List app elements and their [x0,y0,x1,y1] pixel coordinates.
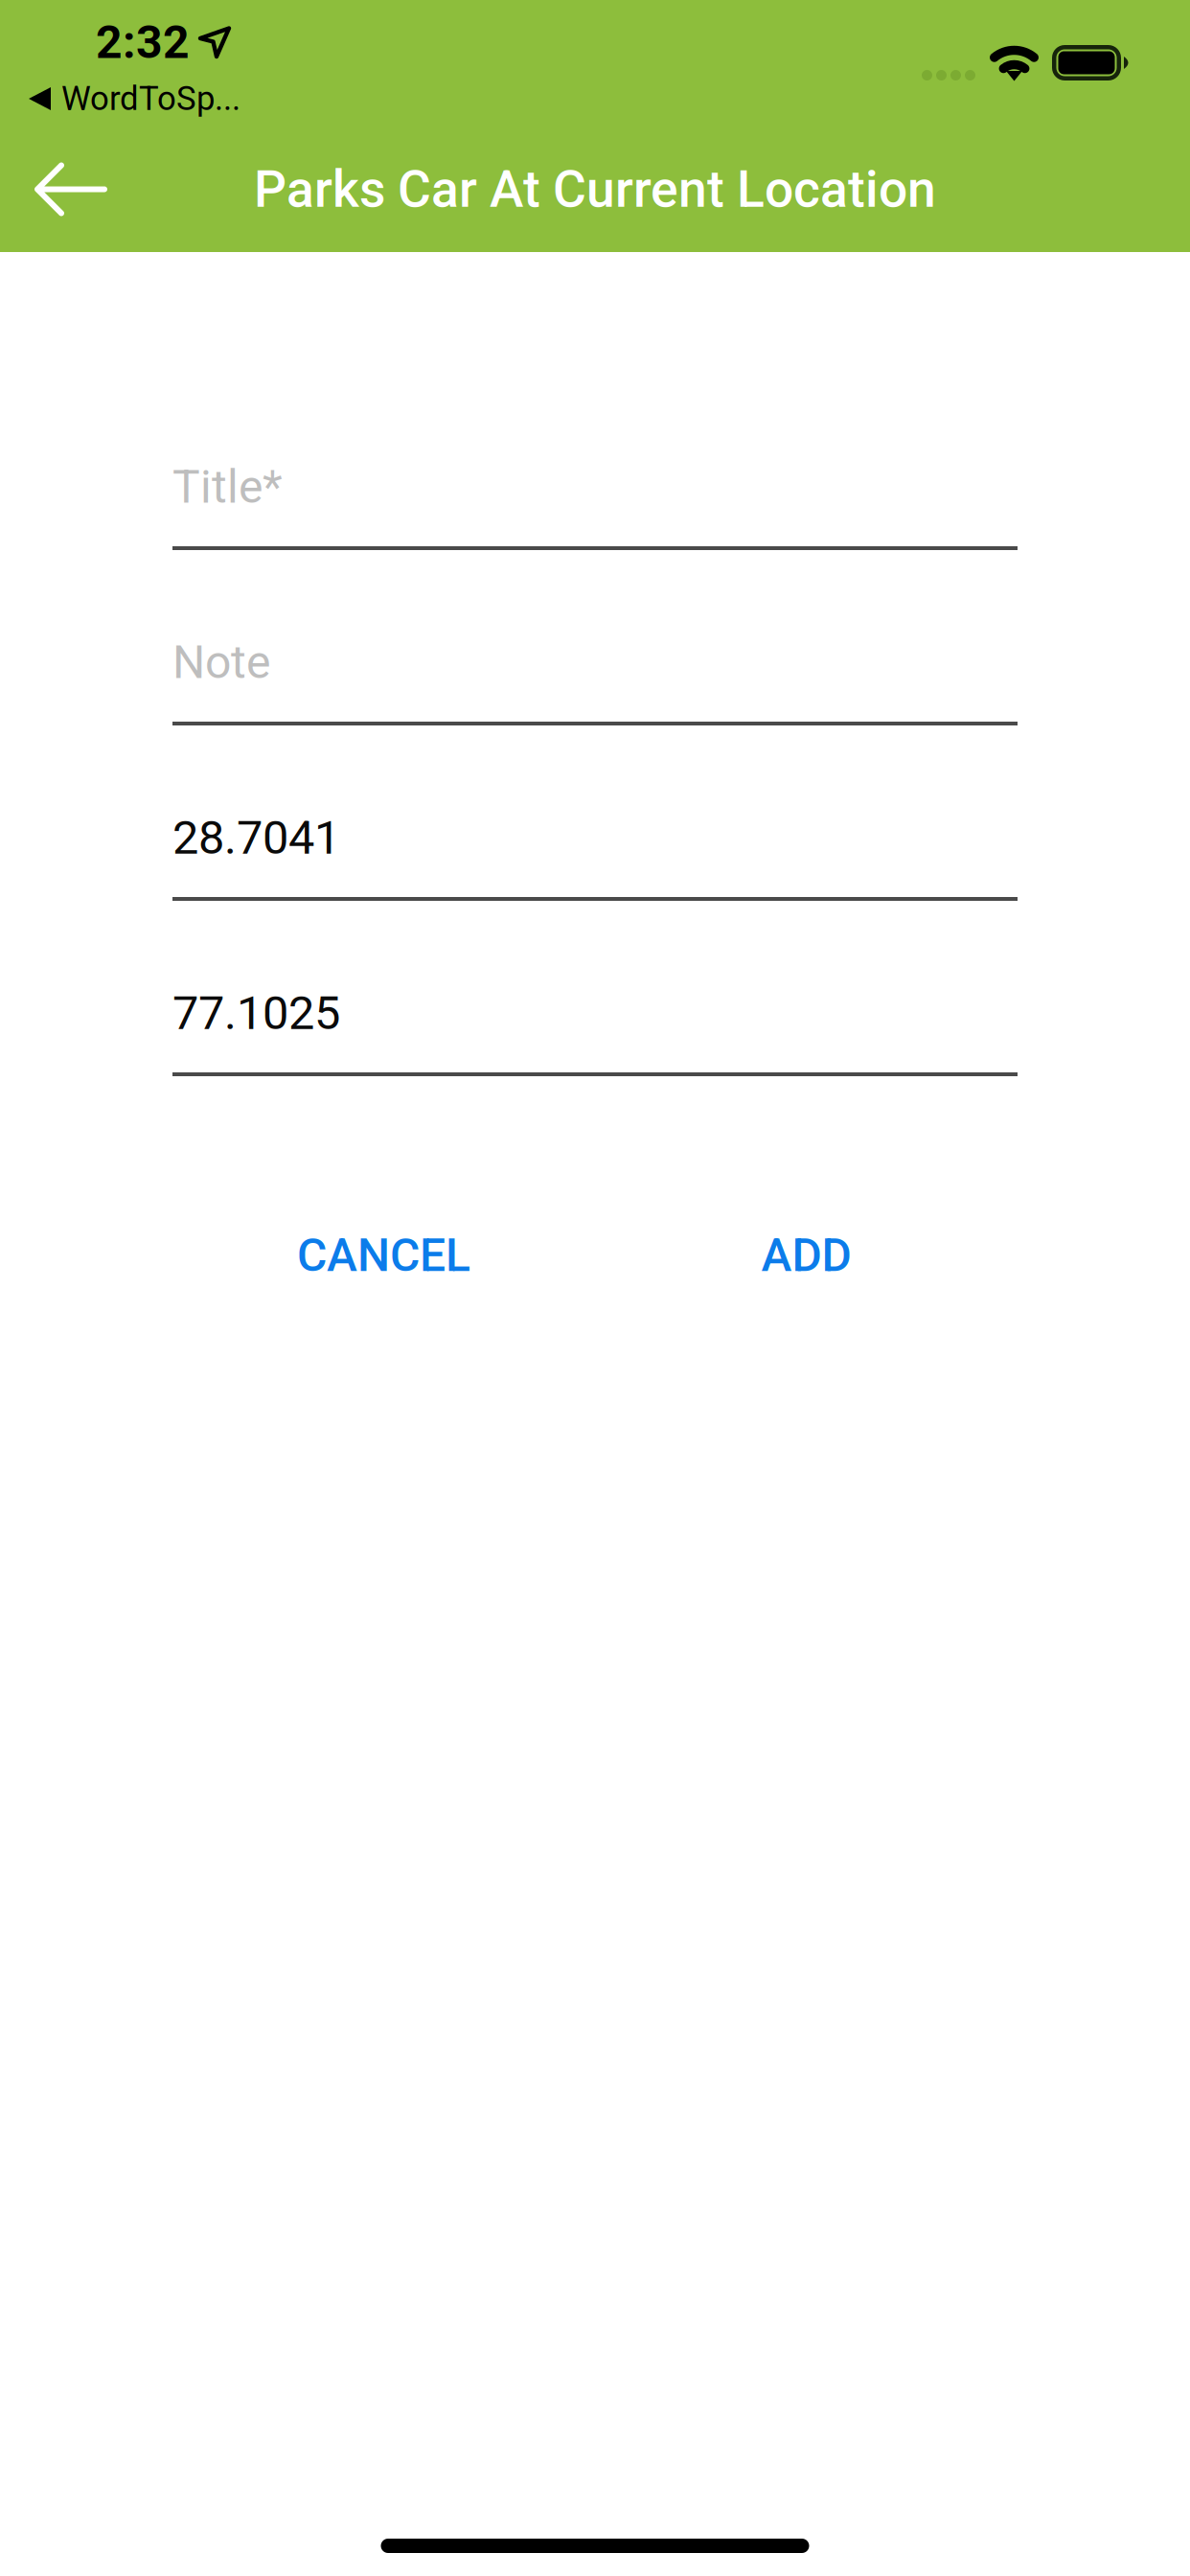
staticText: Title* [172,460,283,514]
button[interactable]: 77.1025 [172,901,1018,1076]
button[interactable]: Note [172,550,1018,725]
staticText: 28.7041 [172,810,340,865]
button[interactable]: CANCEL [172,1076,595,1282]
button[interactable]: Title* [172,375,1018,550]
staticText: ADD [761,1228,851,1282]
staticText: 77.1025 [172,986,340,1040]
staticText: WordToSp... [61,79,240,118]
staticText: Note [172,635,270,689]
button[interactable]: Back [0,126,142,252]
button[interactable]: 28.7041 [172,725,1018,901]
staticText: CANCEL [297,1228,470,1282]
button[interactable]: ADD [595,1076,1018,1282]
staticText: Parks Car At Current Location [254,159,936,219]
staticText: 2:32 [96,15,190,69]
